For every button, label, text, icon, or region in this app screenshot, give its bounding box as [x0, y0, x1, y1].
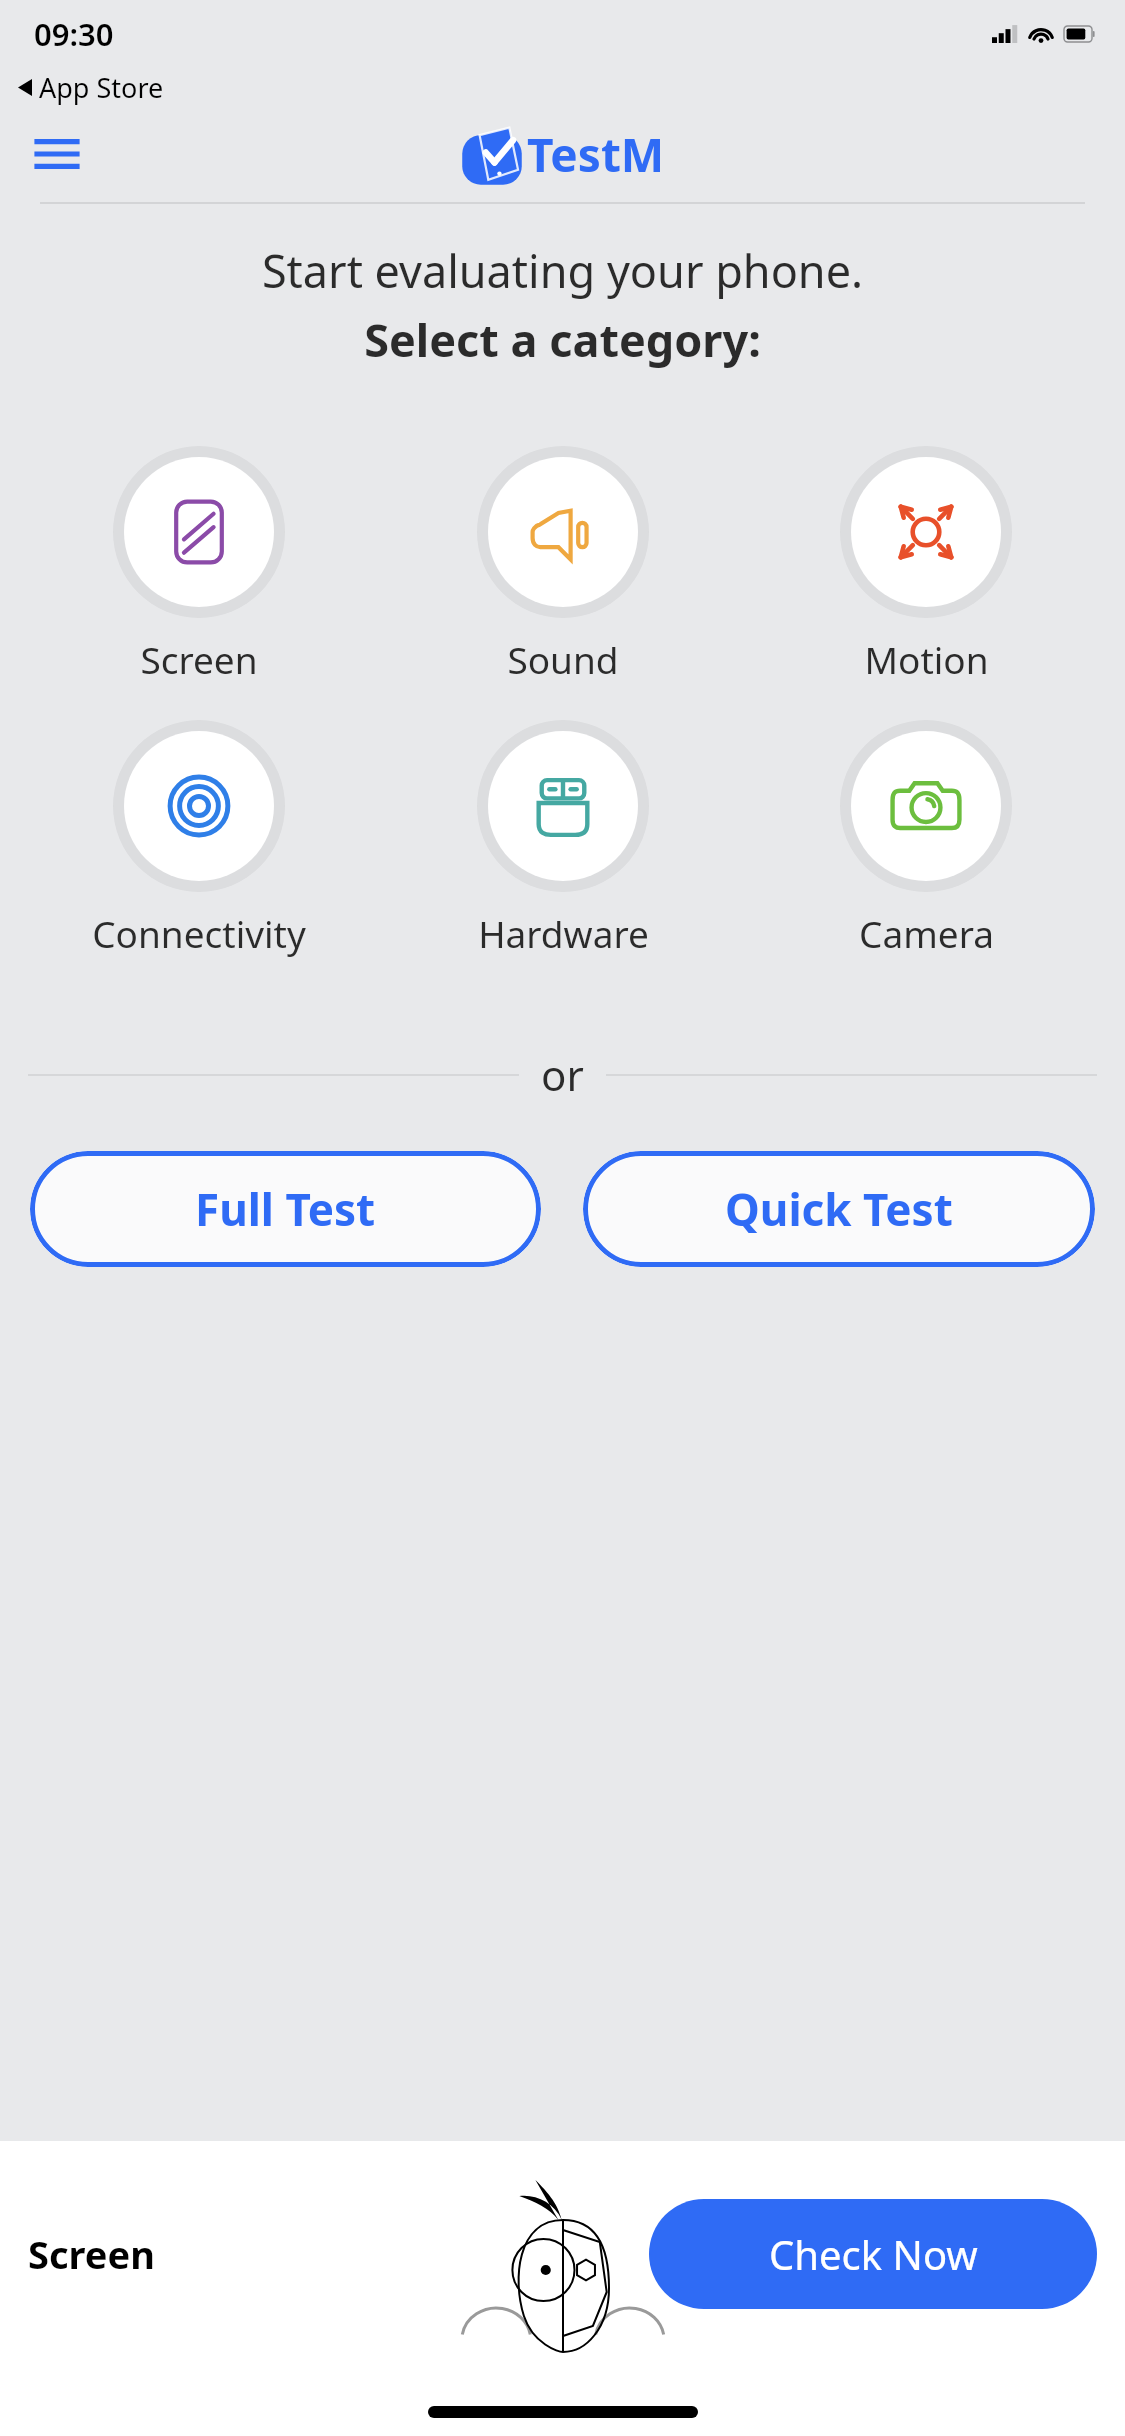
- button[interactable]: Menu: [28, 129, 86, 179]
- staticText: Quick Test: [725, 1179, 953, 1239]
- button[interactable]: Camera: [761, 720, 1091, 958]
- button[interactable]: Quick Test: [583, 1151, 1095, 1267]
- button[interactable]: Full Test: [30, 1151, 541, 1267]
- staticText: Connectivity: [92, 908, 306, 958]
- button[interactable]: App Store: [18, 68, 1125, 106]
- button[interactable]: Motion: [761, 446, 1091, 684]
- staticText: Screen: [140, 634, 258, 684]
- button[interactable]: Sound: [398, 446, 728, 684]
- staticText: TestM: [527, 123, 665, 186]
- button[interactable]: Connectivity: [34, 720, 364, 958]
- staticText: Sound: [507, 634, 619, 684]
- button[interactable]: Hardware: [398, 720, 728, 958]
- button[interactable]: Check Now: [649, 2199, 1097, 2309]
- staticText: Start evaluating your phone.: [0, 240, 1125, 301]
- staticText: Check Now: [769, 2227, 978, 2281]
- staticText: or: [541, 1046, 584, 1103]
- staticText: 09:30: [34, 13, 114, 55]
- staticText: Full Test: [195, 1179, 376, 1239]
- staticText: Camera: [859, 908, 994, 958]
- staticText: Screen: [28, 2228, 155, 2280]
- staticText: Motion: [864, 634, 989, 684]
- button[interactable]: Screen: [34, 446, 364, 684]
- staticText: App Store: [39, 69, 164, 106]
- staticText: Select a category:: [0, 309, 1125, 370]
- staticText: Hardware: [478, 908, 649, 958]
